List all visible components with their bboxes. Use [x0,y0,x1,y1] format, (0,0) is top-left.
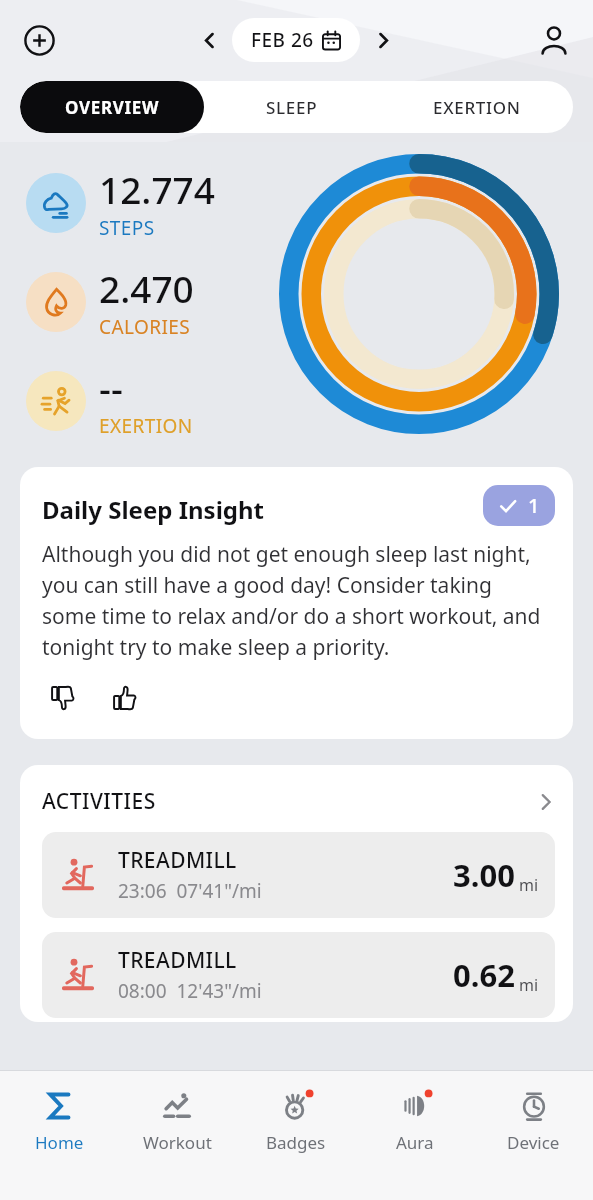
staticText: Although you did not get enough sleep la… [42,540,551,661]
button[interactable]: OVERVIEW [20,81,204,133]
button[interactable]: Home [0,1071,118,1200]
staticText: EXERTION [433,96,521,119]
button[interactable]: Daily Sleep Insight [20,467,573,739]
staticText: Daily Sleep Insight [42,493,264,526]
staticText: -- [99,362,123,412]
staticText: CALORIES [99,314,191,340]
button[interactable]: 2.470 [26,263,194,340]
staticText: Device [507,1131,560,1154]
button[interactable]: Next day [366,23,400,57]
staticText: 23:06 07'41"/mi [118,878,262,904]
button[interactable]: Dislike [42,677,84,719]
staticText: 08:00 12'43"/mi [118,978,262,1004]
button[interactable]: Previous day [192,23,226,57]
button[interactable]: -- [26,362,193,439]
staticText: Workout [143,1131,212,1154]
button[interactable]: 12.774 [26,164,215,241]
staticText: 0.62 [453,954,515,996]
button[interactable]: Workout [118,1071,236,1200]
staticText: 2.470 [99,263,194,313]
button[interactable]: SLEEP [204,81,380,133]
staticText: 12.774 [99,164,215,214]
button[interactable]: Add [18,19,60,61]
button[interactable]: ACTIVITIES [42,787,555,816]
button[interactable]: Device [474,1071,593,1200]
staticText: SLEEP [266,96,318,119]
staticText: TREADMILL [118,846,237,875]
button[interactable]: Like [104,677,146,719]
button[interactable]: 1 [483,485,555,526]
button[interactable]: EXERTION [380,81,573,133]
staticText: mi [519,974,539,996]
button[interactable]: TREADMILL [42,832,555,918]
staticText: Aura [396,1131,434,1154]
staticText: 1 [528,492,540,519]
staticText: Home [35,1131,84,1154]
staticText: FEB 26 [251,27,314,53]
button[interactable]: TREADMILL [42,932,555,1018]
button[interactable]: Aura [355,1071,474,1200]
button[interactable]: Badges [236,1071,355,1200]
staticText: STEPS [99,215,155,241]
staticText: Badges [266,1131,326,1154]
staticText: OVERVIEW [65,96,160,119]
staticText: EXERTION [99,413,193,439]
staticText: TREADMILL [118,946,237,975]
button[interactable]: FEB 26 [232,18,360,62]
staticText: 3.00 [453,854,515,896]
button[interactable]: Profile [533,19,575,61]
staticText: ACTIVITIES [42,787,156,816]
staticText: mi [519,874,539,896]
